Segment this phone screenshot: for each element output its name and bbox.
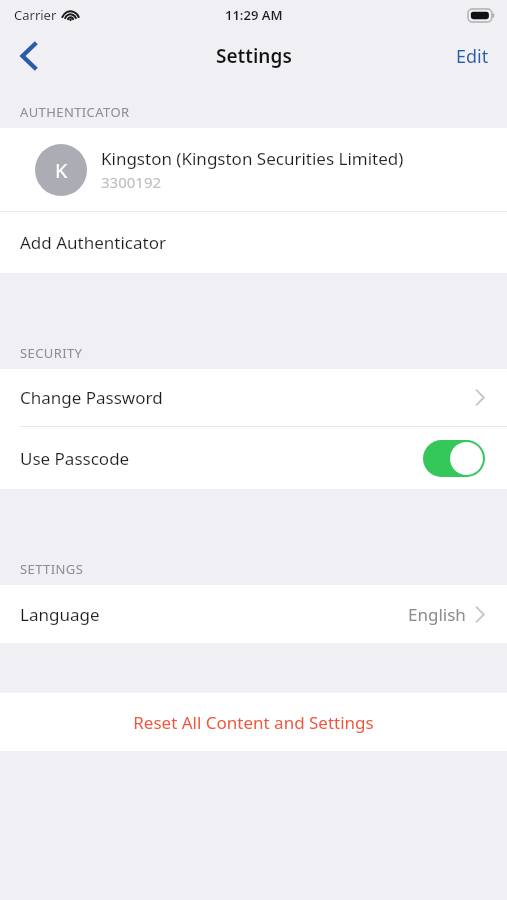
staticText: Add Authenticator xyxy=(20,231,166,254)
staticText: SETTINGS xyxy=(20,560,84,578)
button[interactable]: Add Authenticator xyxy=(0,212,507,273)
button[interactable]: Reset All Content and Settings xyxy=(0,693,507,751)
staticText: Language xyxy=(20,603,100,626)
button[interactable]: Change Password xyxy=(0,369,507,426)
button[interactable]: Edit xyxy=(438,30,507,82)
staticText: Carrier xyxy=(14,6,57,24)
staticText: Kingston (Kingston Securities Limited) xyxy=(101,147,404,170)
button[interactable]: Use Passcode toggle xyxy=(423,440,485,477)
staticText: Reset All Content and Settings xyxy=(133,711,374,734)
staticText: English xyxy=(408,603,466,626)
staticText: Use Passcode xyxy=(20,447,130,470)
staticText: AUTHENTICATOR xyxy=(20,103,130,121)
staticText: Edit xyxy=(456,44,489,69)
button[interactable]: Use Passcode xyxy=(0,427,507,489)
staticText: 11:29 AM xyxy=(225,6,283,24)
staticText: Settings xyxy=(216,43,292,69)
staticText: K xyxy=(55,157,68,184)
staticText: 3300192 xyxy=(101,172,162,192)
button[interactable]: Back xyxy=(0,30,58,82)
staticText: Change Password xyxy=(20,386,163,409)
staticText: SECURITY xyxy=(20,344,83,362)
button[interactable]: K xyxy=(0,128,507,211)
button[interactable]: Language xyxy=(0,585,507,643)
